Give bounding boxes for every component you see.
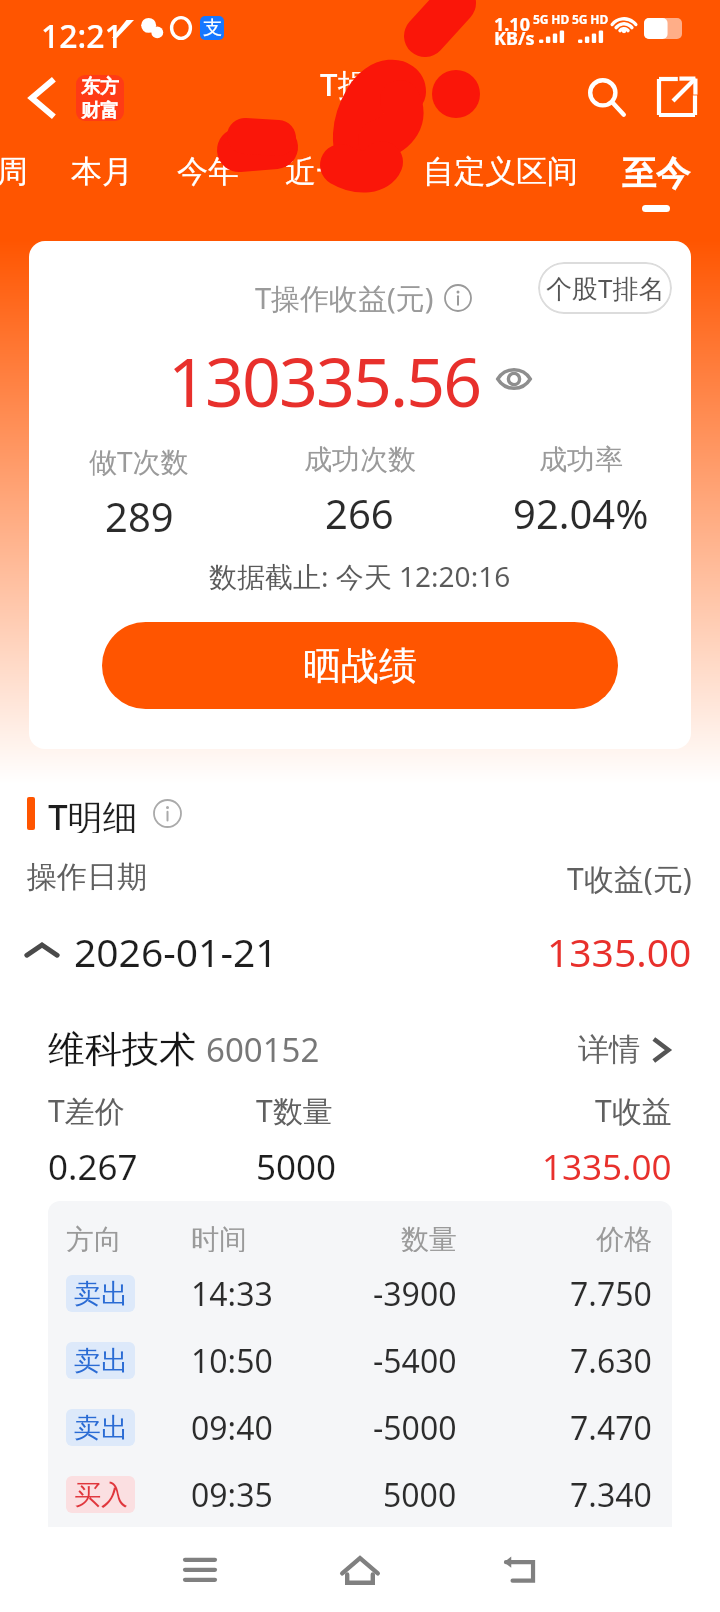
button[interactable]: Back [16,70,68,126]
staticText: 成功率 [539,442,623,477]
staticText: 支 [203,16,222,40]
staticText: 东方 [81,75,119,99]
staticText: 130335.56 [168,334,481,426]
staticText: T明细 [48,793,138,833]
button[interactable]: Share [648,68,706,126]
staticText: 0.267 [48,1143,138,1191]
staticText: 289 [105,489,174,543]
staticText: 5G HD [533,11,570,27]
staticText: 价格 [596,1222,652,1252]
staticText: -5000 [373,1406,457,1450]
staticText: 1335.00 [547,925,692,977]
button[interactable]: Recent apps [160,1533,240,1607]
staticText: T操作收益(元) [255,278,434,318]
button[interactable]: 至今 [556,152,720,220]
staticText: 数据截止: 今天 12:20:16 [209,557,511,595]
staticText: 方向 [66,1222,122,1252]
button[interactable]: 2026-01-21 [0,925,720,977]
staticText: 卖出 [74,1411,128,1445]
staticText: 7.750 [570,1272,652,1316]
button[interactable]: 自定义区间 [400,152,600,220]
staticText: -3900 [373,1272,457,1316]
staticText: 近一年 [285,152,378,191]
staticText: 12:21 [41,14,123,58]
staticText: 5G HD [572,11,609,27]
staticText: T差价 [48,1090,125,1131]
staticText: 09:35 [191,1473,273,1517]
staticText: 卖出 [74,1344,128,1378]
staticText: 7.630 [570,1339,652,1383]
staticText: 自定义区间 [423,152,578,191]
staticText: 今年 [177,152,239,191]
button[interactable]: 详情 [578,1030,672,1069]
button[interactable]: 晒战绩 [102,622,618,709]
staticText: 2026-01-21 [74,925,278,977]
button[interactable]: Home [320,1533,400,1607]
staticText: 时间 [191,1222,247,1252]
staticText: T收益 [595,1090,672,1131]
staticText: 本月 [71,152,133,191]
staticText: T收益(元) [567,858,692,899]
staticText: 做T次数 [89,442,189,480]
staticText: T数量 [256,1090,333,1131]
staticText: 266 [325,486,394,540]
staticText: 详情 [578,1030,640,1069]
staticText: 09:40 [191,1406,273,1450]
staticText: 操作日期 [27,858,147,896]
button[interactable]: 周 [0,152,112,220]
staticText: 卖出 [74,1277,128,1311]
button[interactable]: Search [578,68,636,126]
button[interactable]: 本月 [2,152,202,220]
staticText: 周 [0,152,28,191]
staticText: 5000 [256,1143,337,1191]
staticText: 维科技术 [48,1026,196,1073]
button[interactable]: 个股T排名 [538,262,672,314]
staticText: 92.04% [513,486,649,540]
staticText: 数量 [401,1222,457,1252]
staticText: 晒战绩 [303,642,417,690]
staticText: KB/s [494,26,535,51]
staticText: 5000 [383,1473,457,1517]
staticText: 买入 [74,1478,128,1512]
button[interactable]: 今年 [108,152,308,220]
staticText: 个股T排名 [546,270,665,306]
staticText: 7.340 [570,1473,652,1517]
staticText: 财富 [81,99,119,121]
staticText: 14:33 [191,1272,273,1316]
staticText: 1.10 [494,12,530,37]
staticText: 成功次数 [304,442,416,477]
staticText: 10:50 [191,1339,273,1383]
staticText: 600152 [206,1027,320,1072]
staticText: -5400 [373,1339,457,1383]
button[interactable]: 近一年 [231,152,431,220]
staticText: T操作 [320,63,400,105]
staticText: 7.470 [570,1406,652,1450]
button[interactable]: Back [480,1533,560,1607]
staticText: 至今 [622,152,690,195]
staticText: 1335.00 [542,1143,672,1191]
